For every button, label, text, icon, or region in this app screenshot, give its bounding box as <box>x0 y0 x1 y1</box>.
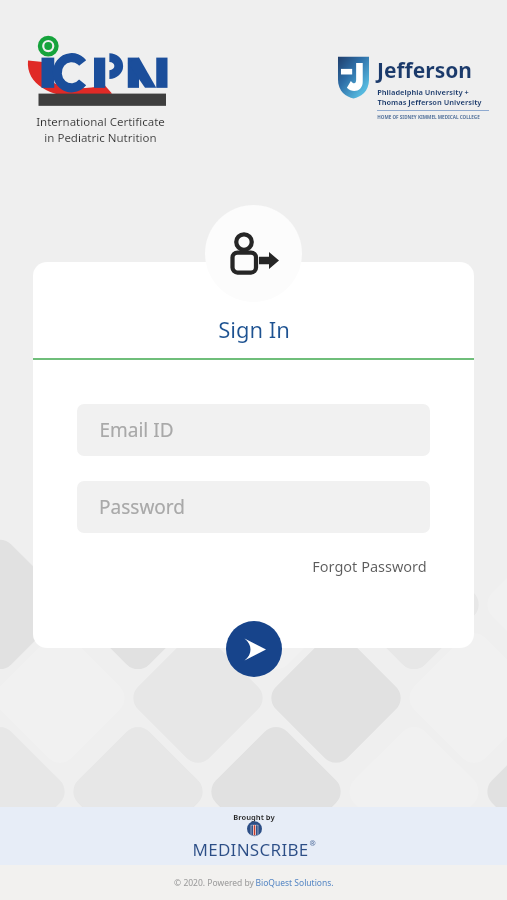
button[interactable]: BioQuest Solutions. <box>255 877 334 889</box>
staticText: Thomas Jefferson University <box>377 97 482 107</box>
staticText: Sign In <box>218 314 290 344</box>
staticText: BioQuest Solutions. <box>255 877 334 889</box>
staticText: HOME OF SIDNEY KIMMEL MEDICAL COLLEGE <box>377 114 480 120</box>
staticText: ® <box>309 838 316 848</box>
staticText: Email ID <box>99 417 174 443</box>
button[interactable]: Sign in <box>226 621 282 677</box>
staticText: © 2020. Powered by <box>173 877 255 889</box>
staticText: in Pediatric Nutrition <box>44 130 157 146</box>
staticText: Password <box>99 494 185 520</box>
staticText: Jefferson <box>377 56 472 85</box>
button[interactable]: Password <box>77 481 430 533</box>
staticText: MEDINSCRIBE <box>192 838 309 861</box>
staticText: International Certificate <box>36 114 165 130</box>
staticText: Brought by <box>233 812 275 822</box>
staticText: Philadelphia University + <box>377 87 469 97</box>
staticText: Forgot Password <box>312 556 427 576</box>
button[interactable]: Email ID <box>77 404 430 456</box>
button[interactable]: Forgot Password <box>309 553 430 579</box>
